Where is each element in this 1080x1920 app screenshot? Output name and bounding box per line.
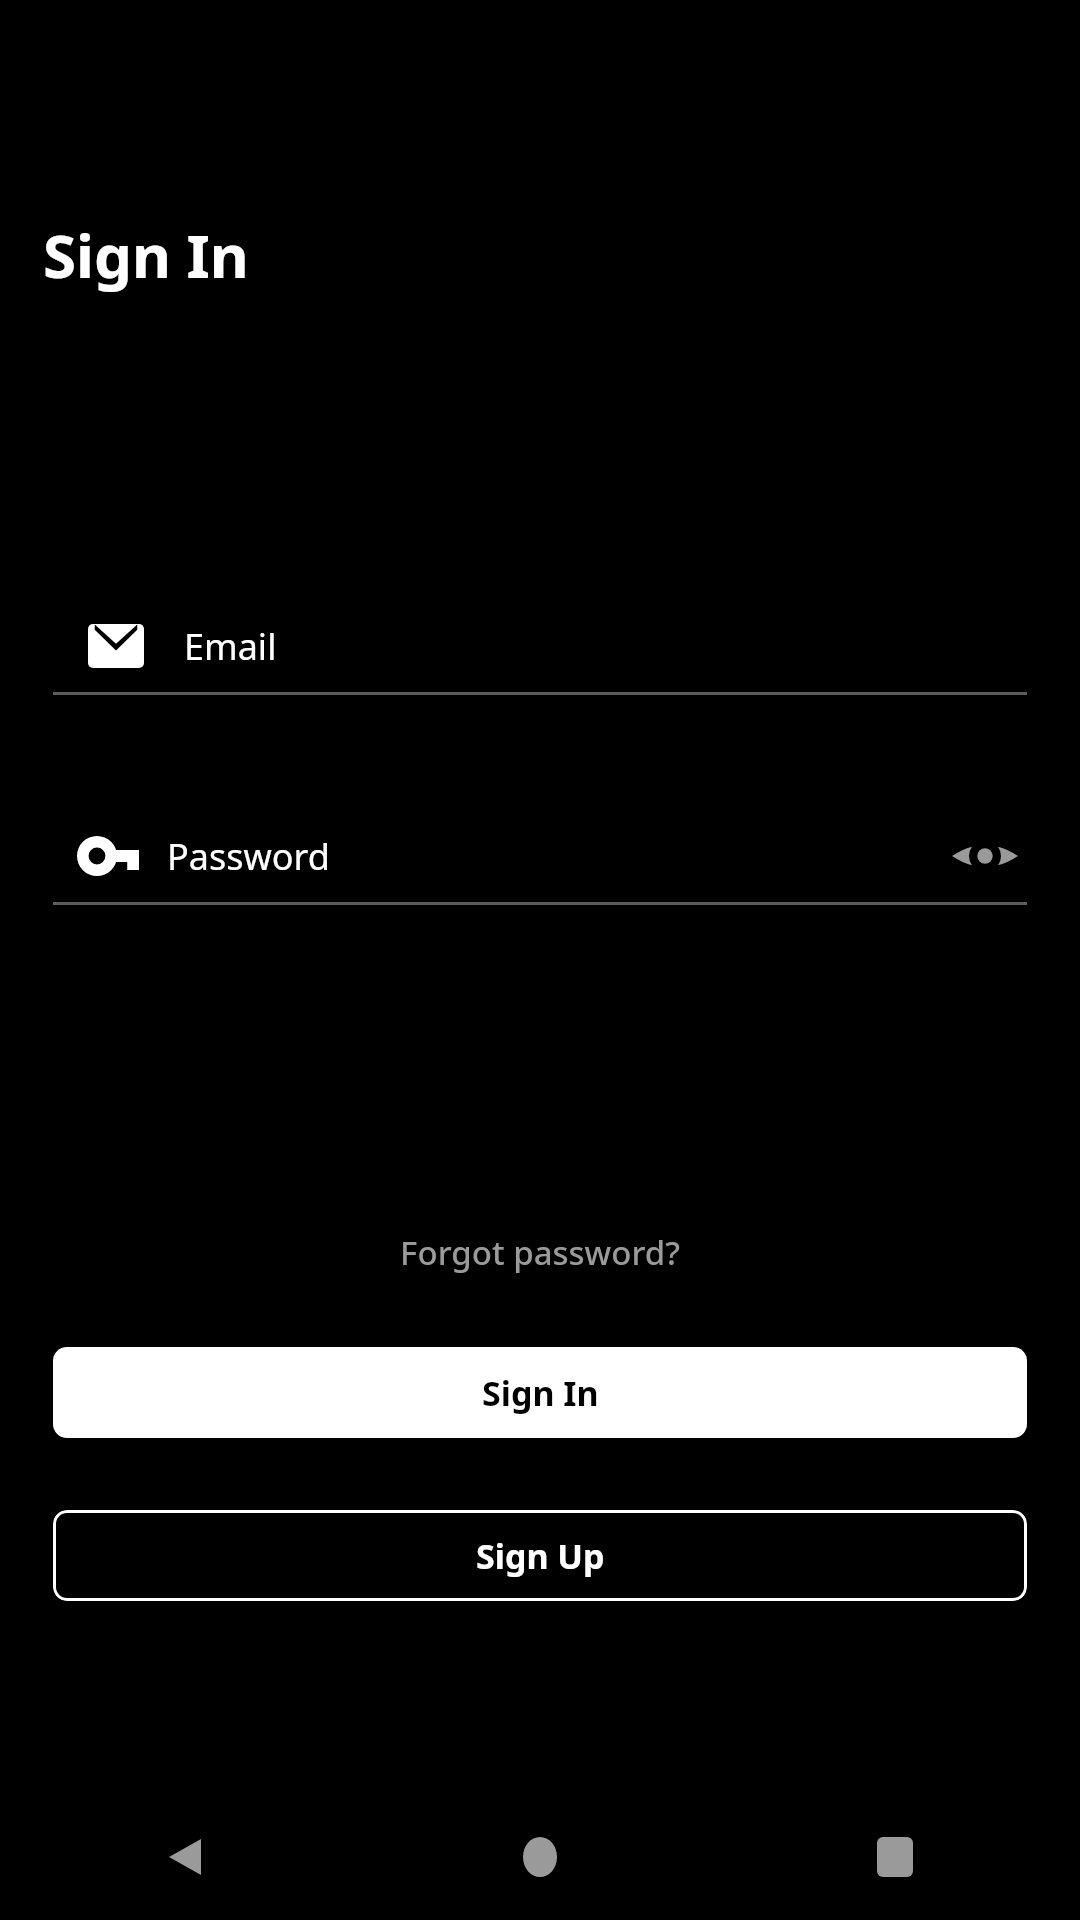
button[interactable]: Recent apps — [840, 1820, 950, 1894]
staticText: Sign In — [43, 214, 249, 296]
button[interactable]: Back — [130, 1820, 240, 1894]
button[interactable]: Home — [485, 1820, 595, 1894]
staticText: Sign In — [482, 1370, 599, 1416]
staticText: Forgot password? — [400, 1230, 680, 1275]
button[interactable]: Email — [53, 600, 1027, 692]
staticText: Password — [167, 832, 330, 881]
staticText: Email — [184, 622, 277, 671]
button[interactable]: Password — [53, 810, 1027, 902]
button[interactable]: Sign Up — [53, 1510, 1027, 1601]
button[interactable]: Forgot password? — [384, 1222, 696, 1283]
staticText: Sign Up — [476, 1533, 605, 1579]
button[interactable]: Show password — [943, 814, 1027, 898]
button[interactable]: Sign In — [53, 1347, 1027, 1438]
